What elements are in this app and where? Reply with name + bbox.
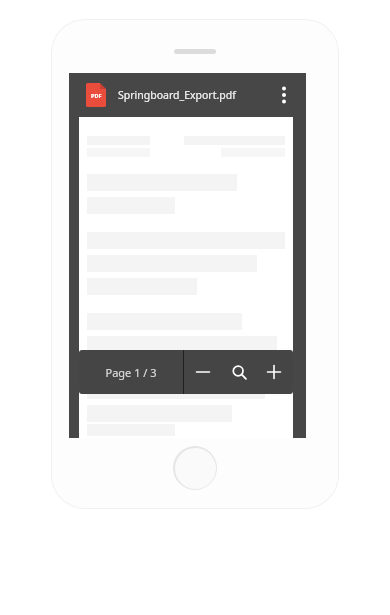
staticText: Springboard_Export.pdf [118,88,236,102]
button[interactable]: Page 1 / 3 [79,350,183,394]
button[interactable]: Search [222,350,256,394]
button[interactable]: Zoom in [257,350,291,394]
button[interactable]: Zoom out [186,350,220,394]
button[interactable]: More options [272,77,296,113]
button[interactable]: PDF file [86,83,106,107]
staticText: PDF [91,92,102,99]
button[interactable]: Home [173,446,217,490]
staticText: Page 1 / 3 [105,365,157,380]
